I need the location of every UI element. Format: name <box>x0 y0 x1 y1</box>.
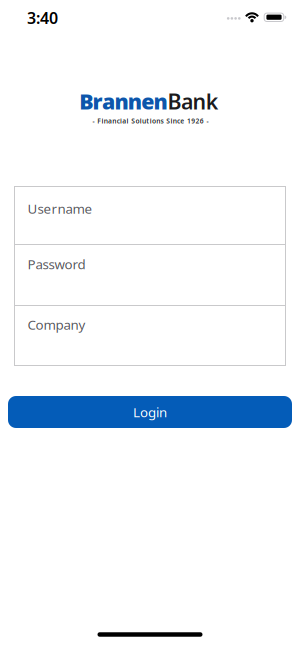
staticText: Login <box>133 403 167 421</box>
button[interactable]: Password text field <box>14 244 285 305</box>
staticText: Company <box>27 316 85 333</box>
staticText: Username <box>27 200 92 217</box>
staticText: - Financial Solutions Since 1926 - <box>93 116 208 125</box>
button[interactable]: Company text field <box>14 305 285 365</box>
button[interactable]: Login <box>8 396 292 428</box>
staticText: 3:40 <box>27 7 58 28</box>
staticText: Brannen <box>79 87 168 115</box>
button[interactable]: Username text field <box>14 186 285 244</box>
staticText: Bank <box>168 87 219 115</box>
staticText: Password <box>27 255 85 273</box>
